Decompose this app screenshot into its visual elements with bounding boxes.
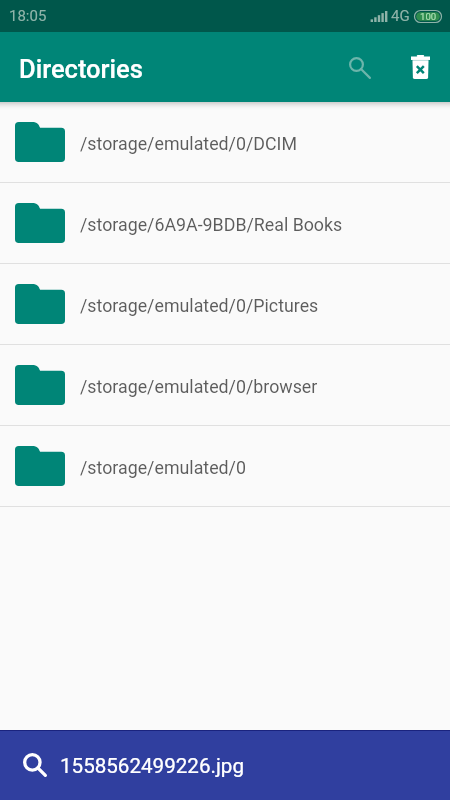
staticText: 18:05 <box>9 7 47 25</box>
staticText: 4G <box>391 7 410 25</box>
staticText: /storage/emulated/0/Pictures <box>80 295 319 316</box>
button[interactable]: /storage/emulated/0/browser <box>0 345 450 425</box>
staticText: /storage/6A9A-9BDB/Real Books <box>80 214 343 235</box>
button[interactable]: /storage/6A9A-9BDB/Real Books <box>0 183 450 263</box>
staticText: Directories <box>19 54 143 84</box>
button[interactable]: /storage/emulated/0 <box>0 426 450 506</box>
button[interactable]: /storage/emulated/0/Pictures <box>0 264 450 344</box>
button[interactable]: Delete all <box>397 44 443 90</box>
staticText: /storage/emulated/0 <box>80 457 246 478</box>
button[interactable]: 1558562499226.jpg <box>0 731 450 800</box>
staticText: 100 <box>420 11 437 22</box>
staticText: 1558562499226.jpg <box>60 754 244 778</box>
button[interactable]: Search <box>337 45 382 90</box>
staticText: /storage/emulated/0/browser <box>80 376 318 397</box>
staticText: /storage/emulated/0/DCIM <box>80 133 297 154</box>
button[interactable]: /storage/emulated/0/DCIM <box>0 102 450 182</box>
